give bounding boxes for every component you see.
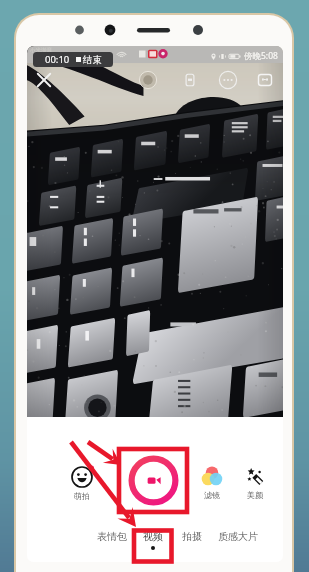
staticText: 傍晚5:08 [244, 50, 278, 62]
staticText: 萌拍 [74, 491, 90, 501]
button[interactable]: 美颜 [234, 465, 276, 507]
button[interactable]: Record video [128, 455, 179, 506]
button[interactable]: 拍摄 [166, 530, 218, 558]
button[interactable]: Sticker [135, 67, 161, 93]
staticText: 视频 [143, 530, 163, 543]
staticText: 00:10 [45, 53, 70, 66]
button[interactable]: 滤镜 [191, 465, 233, 507]
button[interactable]: More options [215, 67, 241, 93]
button[interactable]: 00:10 [33, 52, 113, 67]
staticText: 质感大片 [218, 530, 258, 543]
button[interactable]: 萌拍 [60, 465, 103, 508]
button[interactable]: Switch camera / beauty [252, 67, 278, 93]
button[interactable]: 视频 [127, 530, 179, 558]
staticText: 美颜 [247, 490, 263, 500]
button[interactable]: Close [31, 67, 57, 93]
staticText: 拍摄 [182, 530, 202, 543]
button[interactable]: 表情包 [86, 530, 138, 558]
staticText: 小米澎湃 [30, 47, 52, 54]
staticText: 表情包 [97, 530, 127, 543]
staticText: 滤镜 [204, 490, 220, 500]
button[interactable]: 质感大片 [212, 530, 264, 558]
staticText: 结束 [83, 54, 102, 66]
button[interactable]: Aspect ratio 3:4 [177, 67, 203, 93]
